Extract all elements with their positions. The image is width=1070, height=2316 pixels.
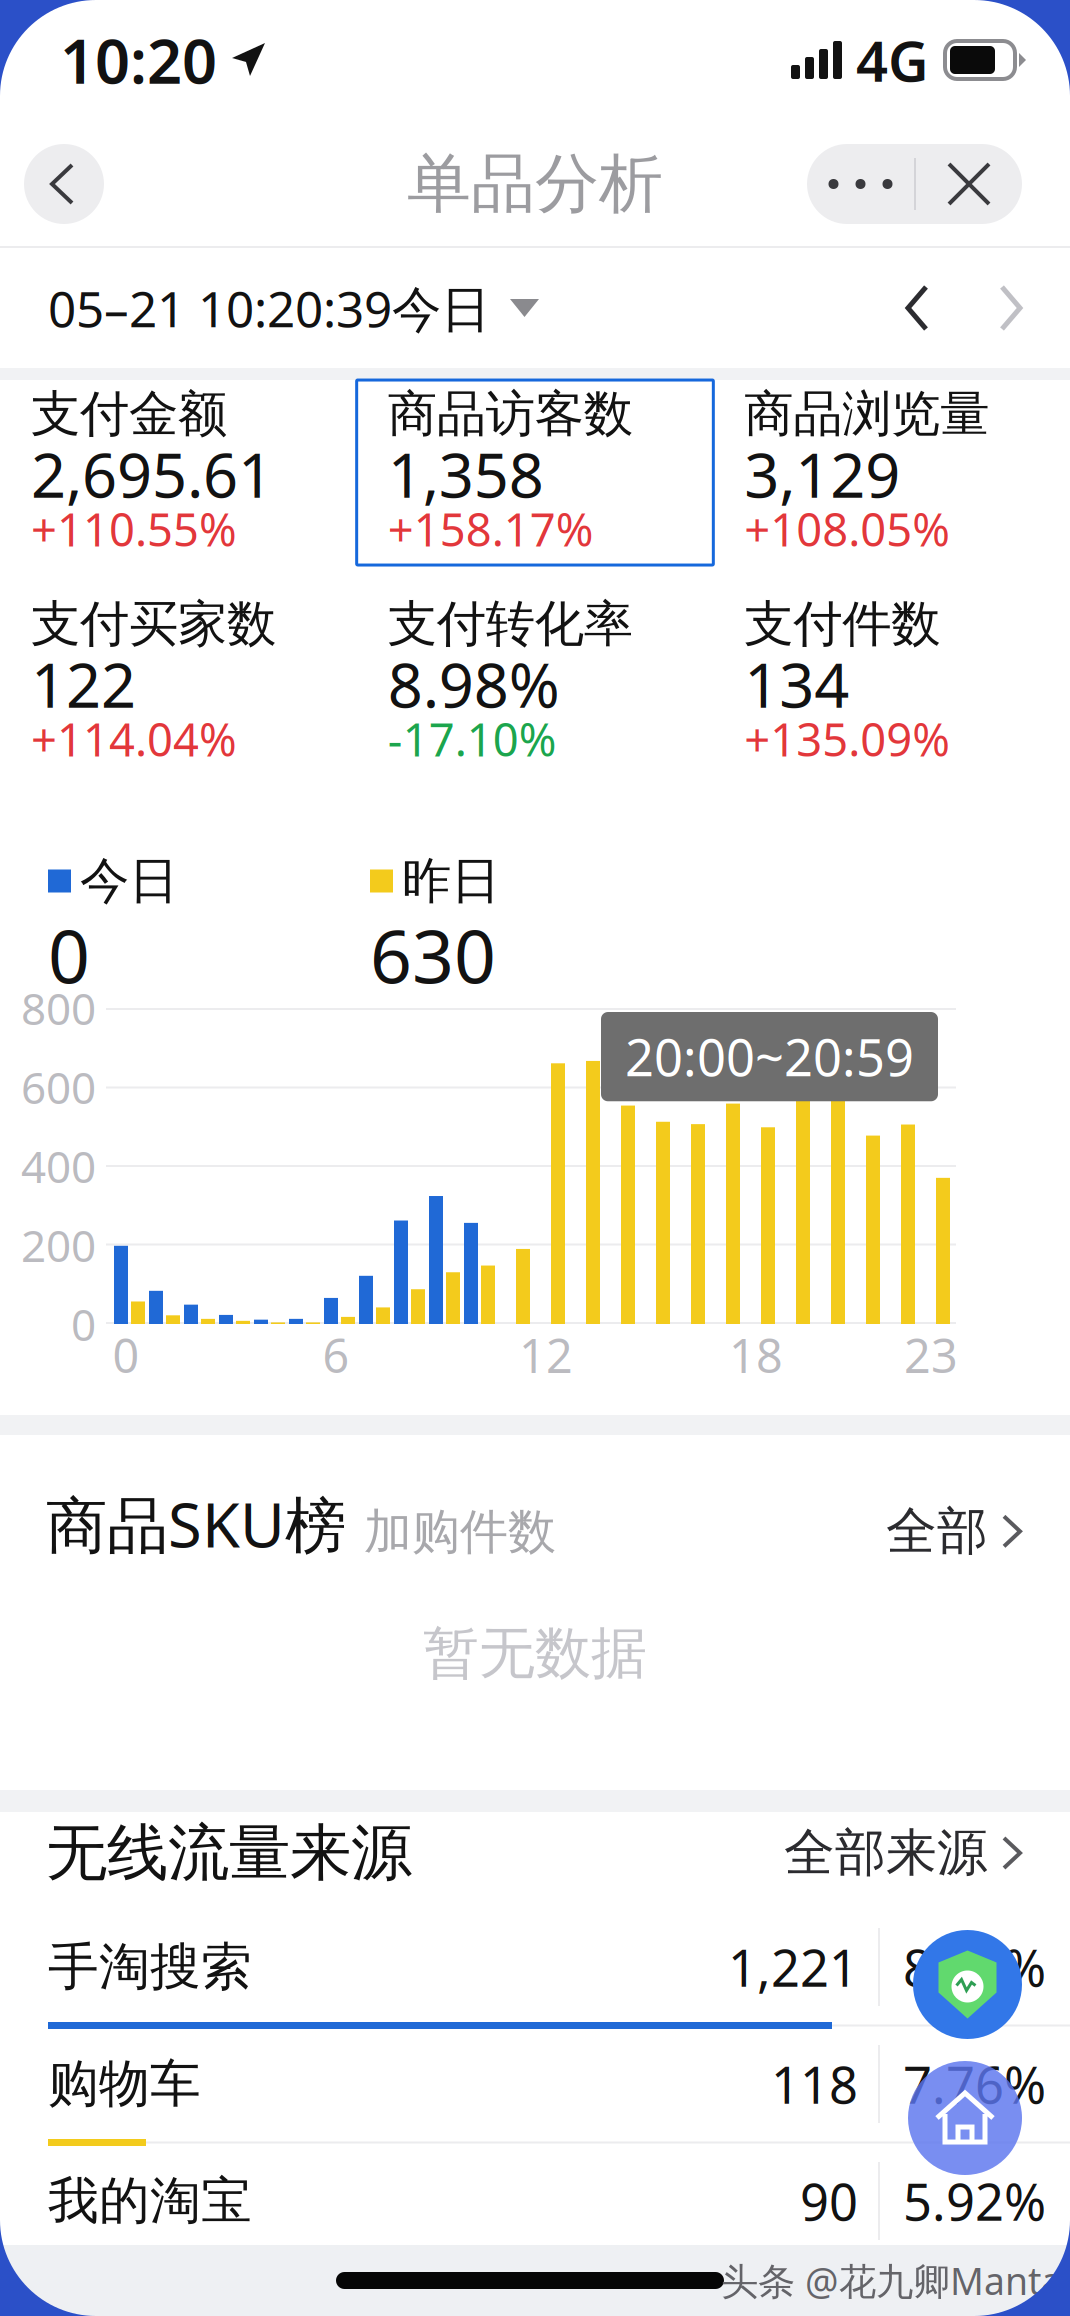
staticText: 0	[112, 1324, 139, 1386]
button[interactable]: 支付件数	[713, 590, 1070, 775]
staticText: 支付买家数	[31, 594, 276, 654]
staticText: 134	[744, 643, 849, 725]
button[interactable]: 安全中心	[913, 1930, 1022, 2039]
staticText: 1,221	[728, 1933, 858, 2001]
staticText: 无线流量来源	[46, 1815, 412, 1891]
staticText: 全部来源	[784, 1822, 988, 1884]
button[interactable]: 商品访客数	[357, 380, 713, 565]
staticText: +135.09%	[744, 709, 950, 769]
staticText: 今日	[80, 851, 178, 911]
staticText: 118	[771, 2050, 858, 2118]
staticText: 商品SKU榜	[46, 1483, 346, 1564]
staticText: 头条 @花九卿Manta	[721, 2256, 1062, 2305]
staticText: 昨日	[402, 851, 500, 911]
staticText: 0	[71, 1295, 96, 1353]
button[interactable]: 我的淘宝	[0, 2146, 1070, 2263]
staticText: 122	[31, 643, 136, 725]
staticText: 暂无数据	[423, 1619, 647, 1688]
button[interactable]: 支付转化率	[357, 590, 713, 775]
staticText: 我的淘宝	[48, 2170, 252, 2232]
staticText: 8.98%	[388, 643, 560, 725]
staticText: 支付转化率	[388, 594, 633, 654]
staticText: +110.55%	[31, 499, 237, 559]
staticText: 2,695.61	[31, 433, 273, 515]
staticText: 80.2%	[903, 1933, 1046, 2001]
staticText: 18	[729, 1324, 783, 1386]
staticText: 12	[519, 1324, 573, 1386]
staticText: 商品访客数	[388, 384, 633, 444]
button[interactable]: 首页	[908, 2061, 1022, 2175]
staticText: 20:00~20:59	[625, 1023, 914, 1090]
staticText: 7.76%	[903, 2050, 1046, 2118]
staticText: 加购件数	[364, 1502, 556, 1561]
staticText: +108.05%	[744, 499, 950, 559]
staticText: 5.92%	[903, 2167, 1046, 2235]
staticText: 630	[370, 906, 496, 1004]
staticText: -17.10%	[388, 709, 557, 769]
staticText: 600	[21, 1058, 96, 1116]
button[interactable]: 全部来源	[784, 1822, 1024, 1884]
button[interactable]: 支付买家数	[0, 590, 357, 775]
button[interactable]: 手淘搜索	[0, 1912, 1070, 2029]
staticText: 23	[904, 1324, 958, 1386]
staticText: 400	[21, 1137, 96, 1195]
button[interactable]: 支付金额	[0, 380, 357, 565]
staticText: 购物车	[48, 2053, 201, 2115]
button[interactable]: 上一天	[870, 248, 964, 368]
button[interactable]: 关闭	[916, 144, 1022, 224]
staticText: 支付件数	[744, 594, 940, 654]
staticText: 手淘搜索	[48, 1936, 252, 1998]
staticText: 4G	[856, 23, 929, 97]
staticText: 单品分析	[407, 145, 663, 223]
staticText: 10:20	[60, 19, 217, 101]
staticText: 1,358	[388, 433, 544, 515]
staticText: 支付金额	[31, 384, 227, 444]
staticText: 90	[800, 2167, 858, 2235]
staticText: 0	[48, 906, 90, 1004]
staticText: 全部	[886, 1500, 988, 1562]
staticText: +114.04%	[31, 709, 237, 769]
staticText: 05–21 10:20:39今日	[48, 275, 490, 341]
button[interactable]: 商品浏览量	[713, 380, 1070, 565]
staticText: 800	[21, 979, 96, 1037]
staticText: 商品浏览量	[744, 384, 989, 444]
button[interactable]: 05–21 10:20:39今日	[48, 275, 539, 341]
button[interactable]: 购物车	[0, 2029, 1070, 2146]
staticText: 6	[322, 1324, 349, 1386]
button[interactable]: 下一天	[964, 248, 1058, 368]
staticText: 200	[21, 1216, 96, 1274]
button[interactable]: 返回	[24, 144, 104, 224]
button[interactable]: 全部	[886, 1500, 1024, 1564]
staticText: +158.17%	[388, 499, 594, 559]
button[interactable]: 更多	[807, 144, 914, 224]
staticText: 3,129	[744, 433, 900, 515]
